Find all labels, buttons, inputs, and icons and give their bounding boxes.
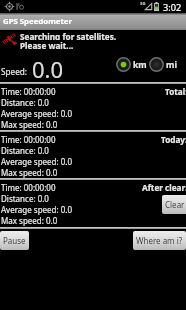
- staticText: Time: 00:00:00: [1, 134, 56, 145]
- staticText: Today:: [161, 134, 186, 145]
- button[interactable]: Pause: [0, 231, 29, 250]
- button[interactable]: Clear: [162, 195, 186, 214]
- staticText: mi: [166, 59, 177, 71]
- staticText: GPS Speedometer: [3, 16, 72, 27]
- button[interactable]: Where am i?: [133, 231, 186, 250]
- staticText: Max speed: 0.0: [1, 119, 58, 130]
- staticText: Where am i?: [136, 235, 183, 246]
- staticText: Max speed: 0.0: [1, 215, 58, 226]
- staticText: 0.0: [32, 54, 64, 84]
- staticText: Pause: [3, 235, 26, 246]
- button[interactable]: mi: [149, 57, 177, 72]
- staticText: Max speed: 0.0: [1, 167, 58, 178]
- staticText: Searching for satellites.: [20, 31, 117, 40]
- staticText: Time: 00:00:00: [1, 86, 56, 97]
- staticText: Average speed: 0.0: [1, 204, 73, 215]
- staticText: Time: 00:00:00: [1, 182, 56, 193]
- staticText: Distance: 0.0: [1, 145, 49, 156]
- staticText: Distance: 0.0: [1, 193, 49, 204]
- staticText: Please wait...: [20, 40, 74, 49]
- staticText: Speed:: [1, 66, 27, 77]
- staticText: Total:: [165, 86, 186, 97]
- staticText: After clear:: [142, 182, 186, 193]
- staticText: Average speed: 0.0: [1, 156, 73, 167]
- staticText: Distance: 0.0: [1, 97, 49, 108]
- staticText: 3G: [140, 1, 146, 7]
- staticText: 3:02: [163, 1, 182, 14]
- staticText: Clear: [165, 199, 185, 210]
- staticText: Average speed: 0.0: [1, 108, 73, 119]
- staticText: km: [133, 59, 147, 71]
- button[interactable]: km: [116, 57, 147, 72]
